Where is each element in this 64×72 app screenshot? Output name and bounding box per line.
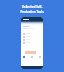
button[interactable] <box>21 32 43 35</box>
button[interactable] <box>21 41 43 44</box>
button[interactable] <box>21 38 43 41</box>
staticText: Unlimited Self- Production Tools <box>20 5 44 14</box>
button[interactable] <box>21 35 43 38</box>
